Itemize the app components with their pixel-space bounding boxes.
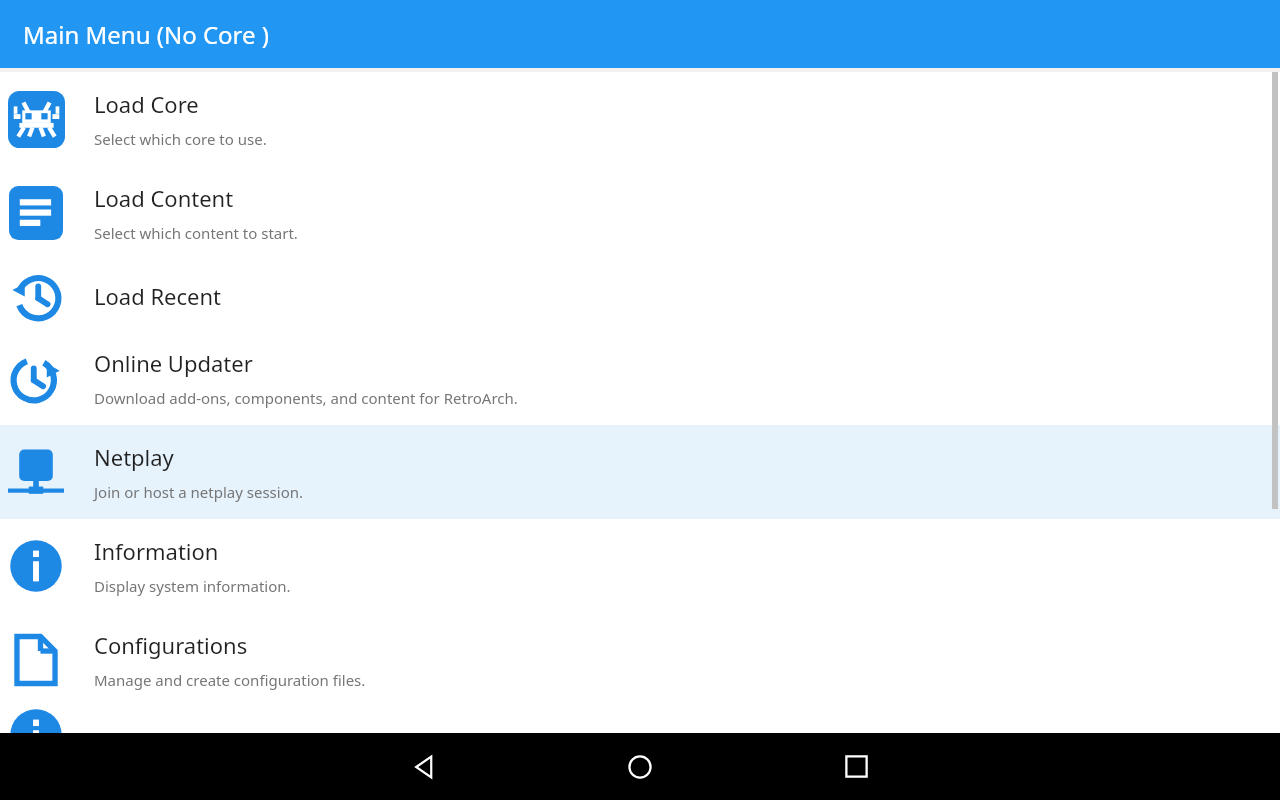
button[interactable] bbox=[0, 707, 1280, 733]
button[interactable]: Recent apps bbox=[820, 733, 892, 800]
staticText: Select which core to use. bbox=[94, 129, 267, 149]
staticText: Join or host a netplay session. bbox=[94, 482, 303, 502]
staticText: Load Core bbox=[94, 89, 199, 119]
button[interactable]: Load Recent bbox=[0, 260, 1280, 331]
staticText: Download add-ons, components, and conten… bbox=[94, 388, 518, 408]
staticText: Display system information. bbox=[94, 576, 291, 596]
button[interactable]: Home bbox=[604, 733, 676, 800]
staticText: Online Updater bbox=[94, 348, 253, 378]
button[interactable]: Load Core bbox=[0, 72, 1280, 166]
button[interactable]: Online Updater bbox=[0, 331, 1280, 425]
staticText: Manage and create configuration files. bbox=[94, 670, 366, 690]
staticText: Information bbox=[94, 536, 219, 566]
button[interactable]: Back bbox=[389, 733, 461, 800]
button[interactable]: Netplay bbox=[0, 425, 1280, 519]
staticText: Select which content to start. bbox=[94, 223, 298, 243]
button[interactable]: Information bbox=[0, 519, 1280, 613]
button[interactable]: Load Content bbox=[0, 166, 1280, 260]
button[interactable]: Configurations bbox=[0, 613, 1280, 707]
staticText: Netplay bbox=[94, 442, 174, 472]
staticText: Main Menu (No Core ) bbox=[23, 18, 269, 51]
staticText: Load Recent bbox=[94, 281, 222, 311]
staticText: Configurations bbox=[94, 630, 248, 660]
staticText: Load Content bbox=[94, 183, 234, 213]
